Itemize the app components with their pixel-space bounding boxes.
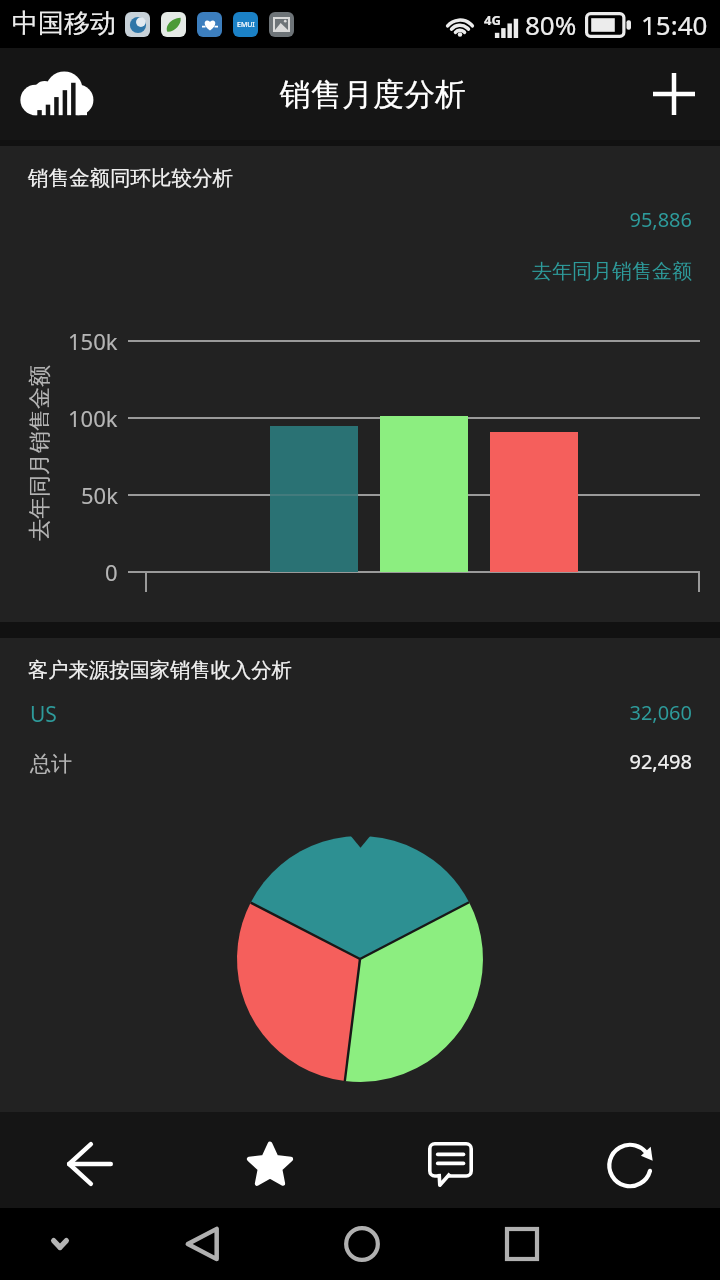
button[interactable]: Dashboard home: [11, 48, 107, 140]
staticText: 150k: [68, 326, 118, 356]
button[interactable]: Back: [163, 1208, 243, 1280]
staticText: 去年同月销售金额: [0, 259, 692, 284]
staticText: US: [30, 700, 57, 729]
staticText: 去年同月销售金额: [26, 365, 54, 541]
staticText: 0: [105, 557, 118, 587]
staticText: 15:40: [641, 7, 708, 42]
button[interactable]: Recent apps: [482, 1208, 562, 1280]
staticText: 总计: [30, 751, 72, 777]
staticText: 销售月度分析: [280, 75, 466, 114]
staticText: 4G: [484, 11, 501, 29]
staticText: 中国移动: [12, 7, 116, 40]
button[interactable]: Favorite: [180, 1112, 360, 1208]
button[interactable]: Comments: [360, 1112, 540, 1208]
button[interactable]: Back: [0, 1112, 180, 1208]
staticText: EMUI: [237, 20, 255, 30]
staticText: 50k: [81, 480, 118, 510]
button[interactable]: Home: [322, 1208, 402, 1280]
button[interactable]: Add: [638, 58, 710, 130]
staticText: 95,886: [0, 206, 692, 233]
staticText: 客户来源按国家销售收入分析: [28, 657, 292, 683]
staticText: 100k: [68, 403, 118, 433]
staticText: 92,498: [0, 748, 692, 775]
button[interactable]: Refresh: [540, 1112, 720, 1208]
staticText: 销售金额同环比较分析: [28, 165, 233, 191]
button[interactable]: Hide navigation bar: [20, 1208, 100, 1280]
staticText: 32,060: [0, 699, 692, 726]
staticText: 80%: [525, 7, 577, 42]
